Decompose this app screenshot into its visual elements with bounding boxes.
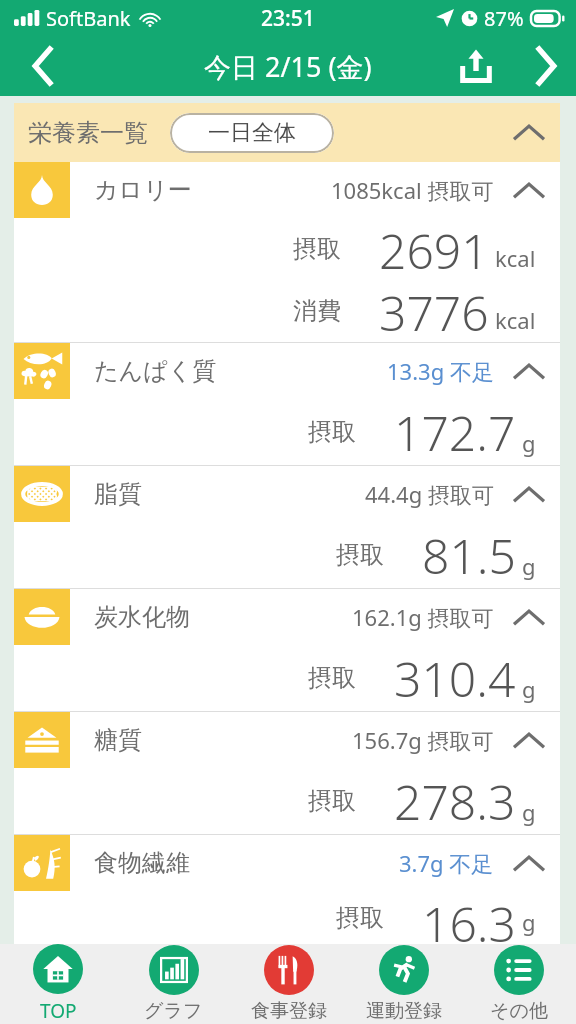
staticText: その他 <box>490 999 548 1023</box>
staticText: g <box>522 674 536 704</box>
staticText: kcal <box>495 243 536 273</box>
staticText: 310.4 <box>394 646 516 711</box>
staticText: 一日全体 <box>208 119 296 147</box>
staticText: 摂取 <box>336 540 384 570</box>
staticText: 摂取 <box>336 903 384 933</box>
staticText: カロリー <box>94 175 192 205</box>
staticText: 162.1g 摂取可 <box>352 602 494 632</box>
staticText: 摂取 <box>308 417 356 447</box>
staticText: 278.3 <box>394 769 516 834</box>
staticText: 23:51 <box>261 4 315 33</box>
staticText: たんぱく質 <box>94 356 217 386</box>
staticText: 3.7g 不足 <box>399 848 494 878</box>
staticText: g <box>522 797 536 827</box>
staticText: 消費 <box>293 296 341 326</box>
staticText: 摂取 <box>308 663 356 693</box>
button[interactable]: 栄養素一覧 <box>14 103 560 162</box>
button[interactable]: たんぱく質 <box>14 343 560 399</box>
button[interactable]: 脂質 <box>14 466 560 522</box>
staticText: 糖質 <box>94 725 142 755</box>
staticText: 栄養素一覧 <box>28 118 148 148</box>
staticText: グラフ <box>144 999 203 1023</box>
staticText: 3776 <box>379 280 489 342</box>
button[interactable]: 前の日 <box>0 36 88 96</box>
button[interactable]: グラフ <box>116 944 231 1024</box>
staticText: 1085kcal 摂取可 <box>331 175 494 205</box>
staticText: SoftBank <box>46 5 131 32</box>
button[interactable]: その他 <box>461 944 576 1024</box>
button[interactable]: 運動登録 <box>346 944 461 1024</box>
staticText: 13.3g 不足 <box>387 356 494 386</box>
staticText: 16.3 <box>422 891 516 944</box>
staticText: 食物繊維 <box>94 848 190 878</box>
button[interactable]: カロリー <box>14 162 560 218</box>
staticText: g <box>522 907 536 937</box>
staticText: 運動登録 <box>366 999 442 1023</box>
staticText: 44.4g 摂取可 <box>365 479 494 509</box>
button[interactable]: TOP <box>0 944 116 1024</box>
staticText: g <box>522 551 536 581</box>
staticText: g <box>522 428 536 458</box>
staticText: 食事登録 <box>251 999 327 1023</box>
staticText: 摂取 <box>308 786 356 816</box>
button[interactable]: 炭水化物 <box>14 589 560 645</box>
staticText: 2691 <box>379 218 489 280</box>
staticText: 87% <box>484 5 524 32</box>
button[interactable]: 次の日 <box>514 36 576 96</box>
staticText: 今日 2/15 (金) <box>204 48 372 85</box>
button[interactable]: 食事登録 <box>231 944 346 1024</box>
staticText: 172.7 <box>394 400 516 465</box>
button[interactable]: 一日全体 <box>170 113 334 153</box>
button[interactable]: 糖質 <box>14 712 560 768</box>
staticText: 摂取 <box>293 234 341 264</box>
staticText: 81.5 <box>422 523 516 588</box>
staticText: 炭水化物 <box>94 602 190 632</box>
staticText: TOP <box>40 998 77 1024</box>
button[interactable]: 食物繊維 <box>14 835 560 891</box>
button[interactable]: 共有 <box>438 36 514 96</box>
staticText: 156.7g 摂取可 <box>352 725 494 755</box>
staticText: kcal <box>495 305 536 335</box>
staticText: 脂質 <box>94 479 142 509</box>
